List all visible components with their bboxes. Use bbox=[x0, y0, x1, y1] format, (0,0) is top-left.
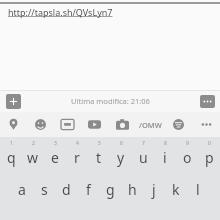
staticText: 9 bbox=[186, 140, 189, 147]
staticText: e bbox=[51, 148, 59, 167]
staticText: 2 bbox=[32, 140, 35, 147]
button[interactable]: g bbox=[99, 177, 121, 201]
button[interactable]: f bbox=[77, 177, 99, 201]
staticText: u bbox=[139, 148, 148, 167]
staticText: r bbox=[74, 148, 80, 167]
button[interactable]: 5 bbox=[88, 139, 110, 167]
staticText: 6 bbox=[120, 140, 123, 147]
button[interactable]: Camera bbox=[108, 112, 136, 137]
button[interactable]: d bbox=[55, 177, 77, 201]
staticText: s bbox=[41, 180, 48, 199]
button[interactable]: 7 bbox=[132, 139, 154, 167]
staticText: 4 bbox=[76, 140, 79, 147]
button[interactable]: s bbox=[33, 177, 55, 201]
staticText: 1 bbox=[10, 140, 13, 147]
staticText: l bbox=[196, 180, 200, 199]
button[interactable]: a bbox=[11, 177, 33, 201]
button[interactable]: 9 bbox=[176, 139, 198, 167]
button[interactable]: 1 bbox=[0, 139, 22, 167]
button[interactable]: 6 bbox=[110, 139, 132, 167]
staticText: d bbox=[62, 180, 71, 199]
button[interactable]: Add bbox=[6, 94, 21, 109]
staticText: w bbox=[27, 148, 39, 167]
button[interactable]: /OMW bbox=[136, 112, 164, 137]
staticText: p bbox=[205, 148, 214, 167]
button[interactable]: 2 bbox=[22, 139, 44, 167]
button[interactable]: Location bbox=[0, 112, 27, 137]
staticText: a bbox=[18, 180, 26, 199]
button[interactable]: 3 bbox=[44, 139, 66, 167]
staticText: f bbox=[86, 180, 91, 199]
button[interactable]: 4 bbox=[66, 139, 88, 167]
staticText: i bbox=[163, 148, 167, 167]
staticText: http://tapsla.sh/QVsLyn7 bbox=[8, 6, 113, 18]
button[interactable]: Music bbox=[164, 112, 192, 137]
button[interactable]: Video bbox=[81, 112, 108, 137]
button[interactable]: 0 bbox=[198, 139, 220, 167]
button[interactable]: Emoji bbox=[27, 112, 54, 137]
staticText: k bbox=[172, 180, 180, 199]
button[interactable]: More bbox=[192, 112, 220, 137]
button[interactable]: k bbox=[165, 177, 187, 201]
button[interactable]: More options bbox=[200, 95, 215, 108]
staticText: 7 bbox=[142, 140, 145, 147]
staticText: y bbox=[117, 148, 125, 167]
button[interactable]: GIF bbox=[54, 112, 81, 137]
staticText: 8 bbox=[164, 140, 167, 147]
button[interactable]: http://tapsla.sh/QVsLyn7 bbox=[0, 4, 220, 20]
button[interactable]: l bbox=[187, 177, 209, 201]
staticText: t bbox=[96, 148, 102, 167]
staticText: q bbox=[7, 148, 16, 167]
staticText: /OMW bbox=[139, 120, 162, 130]
staticText: 3 bbox=[54, 140, 57, 147]
button[interactable]: j bbox=[143, 177, 165, 201]
staticText: 5 bbox=[98, 140, 101, 147]
button[interactable]: h bbox=[121, 177, 143, 201]
staticText: Ultima modifica: 21:06 bbox=[71, 96, 150, 106]
staticText: o bbox=[183, 148, 192, 167]
staticText: 0 bbox=[208, 140, 211, 147]
staticText: g bbox=[106, 180, 115, 199]
staticText: j bbox=[152, 180, 156, 199]
staticText: h bbox=[128, 180, 137, 199]
button[interactable]: 8 bbox=[154, 139, 176, 167]
